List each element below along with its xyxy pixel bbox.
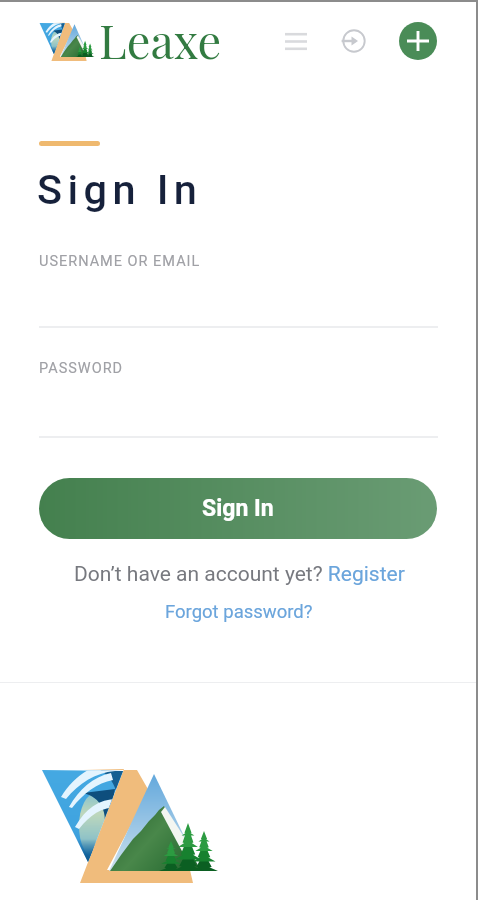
button[interactable]: Don’t have an account yet? Register	[74, 562, 405, 587]
staticText: USERNAME OR EMAIL	[39, 253, 201, 270]
staticText: Sign In	[202, 495, 274, 522]
staticText: PASSWORD	[39, 360, 124, 377]
button[interactable]: Add	[399, 22, 437, 60]
button[interactable]: Leaxe	[38, 10, 222, 73]
staticText: Leaxe	[99, 8, 222, 71]
button[interactable]: Sign in	[334, 21, 374, 61]
staticText: Sign In	[37, 165, 203, 214]
button[interactable]: Forgot password?	[165, 601, 313, 623]
button[interactable]: Menu	[276, 21, 316, 61]
button[interactable]: Sign In	[39, 478, 437, 539]
